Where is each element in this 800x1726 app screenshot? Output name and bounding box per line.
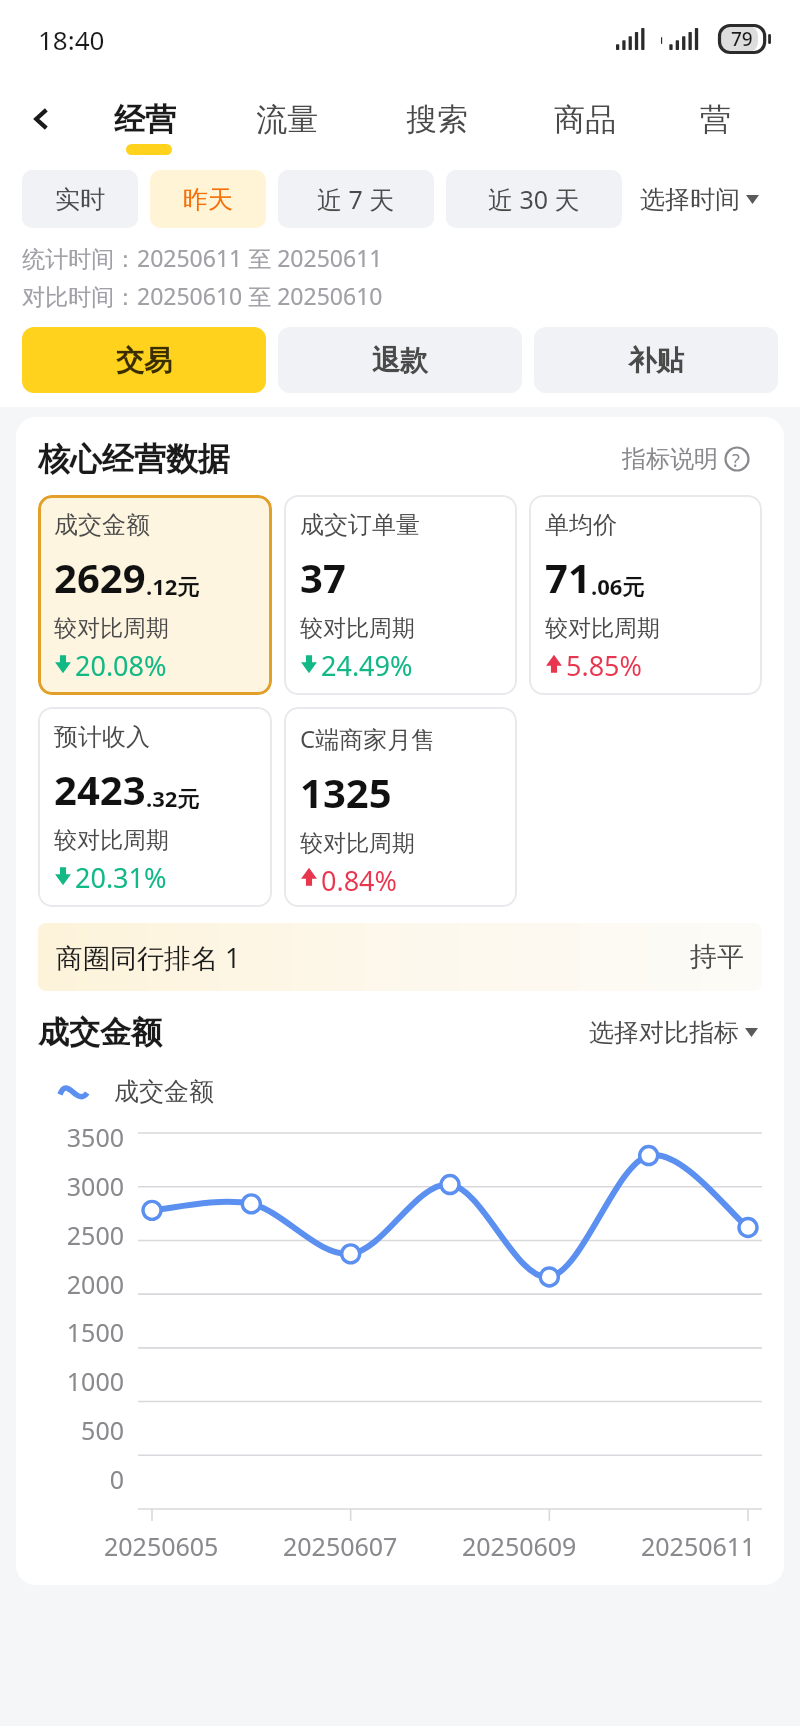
staticText: 79 [731, 26, 753, 52]
staticText: 统计时间：20250611 至 20250611 [22, 242, 383, 273]
button[interactable]: 昨天 [150, 170, 266, 228]
staticText: 2629 [54, 550, 146, 604]
staticText: 指标说明 [622, 444, 718, 474]
button[interactable]: 近 30 天 [446, 170, 622, 228]
staticText: 1325 [300, 765, 392, 819]
staticText: 500 [38, 1413, 124, 1447]
staticText: 经营 [114, 100, 176, 139]
staticText: 20250611 [641, 1529, 756, 1563]
staticText: 20250609 [462, 1529, 577, 1563]
staticText: 较对比周期 [300, 614, 415, 643]
staticText: ? [732, 448, 740, 473]
staticText: 营 [700, 100, 731, 139]
staticText: 流量 [256, 100, 318, 139]
staticText: 昨天 [183, 184, 233, 215]
staticText: 20250607 [283, 1529, 398, 1563]
button[interactable]: 指标说明 [618, 440, 762, 478]
staticText: 成交金额 [114, 1076, 214, 1107]
button[interactable]: 经营 [108, 92, 182, 147]
staticText: 交易 [116, 343, 172, 378]
staticText: 2423 [54, 762, 146, 816]
staticText: 选择时间 [640, 184, 740, 215]
staticText: 商圈同行排名 1 [56, 939, 241, 976]
staticText: 3500 [38, 1120, 124, 1154]
staticText: 预计收入 [54, 722, 150, 752]
button[interactable]: 选择对比指标 [585, 1013, 762, 1052]
button[interactable]: 营 [694, 92, 737, 147]
staticText: 71 [545, 550, 591, 604]
staticText: 较对比周期 [300, 829, 415, 858]
button[interactable]: C端商家月售 [284, 707, 517, 907]
staticText: 退款 [372, 343, 428, 378]
staticText: 18:40 [38, 22, 105, 57]
staticText: 较对比周期 [54, 826, 169, 855]
staticText: 2000 [38, 1267, 124, 1301]
staticText: 单均价 [545, 510, 617, 540]
staticText: 较对比周期 [54, 614, 169, 643]
staticText: 0.84% [321, 862, 398, 892]
staticText: 3000 [38, 1169, 124, 1203]
button[interactable]: 退款 [278, 327, 522, 393]
staticText: 较对比周期 [545, 614, 660, 643]
button[interactable]: 交易 [22, 327, 266, 393]
button[interactable]: 选择时间 [636, 176, 763, 223]
staticText: 24.49% [321, 647, 413, 680]
staticText: 1500 [38, 1315, 124, 1349]
button[interactable]: 实时 [22, 170, 138, 228]
staticText: C端商家月售 [300, 722, 436, 755]
staticText: 20.08% [75, 647, 167, 680]
staticText: 核心经营数据 [38, 439, 230, 479]
staticText: 37 [300, 550, 346, 604]
button[interactable]: 单均价 [529, 495, 762, 695]
staticText: 2500 [38, 1218, 124, 1252]
staticText: 补贴 [628, 343, 684, 378]
button[interactable]: 商品 [548, 92, 622, 147]
staticText: 对比时间：20250610 至 20250610 [22, 280, 383, 311]
staticText: 成交订单量 [300, 510, 420, 540]
staticText: 20.31% [75, 859, 167, 892]
staticText: 0 [38, 1462, 124, 1496]
button[interactable]: Back [18, 95, 66, 143]
button[interactable]: 商圈同行排名 1 [38, 923, 762, 991]
staticText: .06元 [591, 571, 645, 601]
button[interactable]: 成交订单量 [284, 495, 517, 695]
staticText: 近 30 天 [488, 182, 580, 216]
staticText: 近 7 天 [317, 182, 395, 216]
staticText: 选择对比指标 [589, 1017, 739, 1048]
staticText: 20250605 [104, 1529, 219, 1563]
staticText: 搜索 [406, 100, 468, 139]
button[interactable]: 补贴 [534, 327, 778, 393]
staticText: 成交金额 [54, 510, 150, 540]
staticText: 商品 [554, 100, 616, 139]
staticText: 成交金额 [38, 1013, 162, 1052]
staticText: 实时 [55, 184, 105, 215]
staticText: 5.85% [566, 647, 643, 680]
staticText: .32元 [146, 783, 200, 813]
staticText: 1000 [38, 1364, 124, 1398]
button[interactable]: 预计收入 [38, 707, 272, 907]
button[interactable]: 搜索 [400, 92, 474, 147]
button[interactable]: 流量 [250, 92, 324, 147]
staticText: 持平 [690, 940, 744, 974]
button[interactable]: 近 7 天 [278, 170, 434, 228]
button[interactable]: 成交金额 [38, 495, 272, 695]
staticText: .12元 [146, 571, 200, 601]
